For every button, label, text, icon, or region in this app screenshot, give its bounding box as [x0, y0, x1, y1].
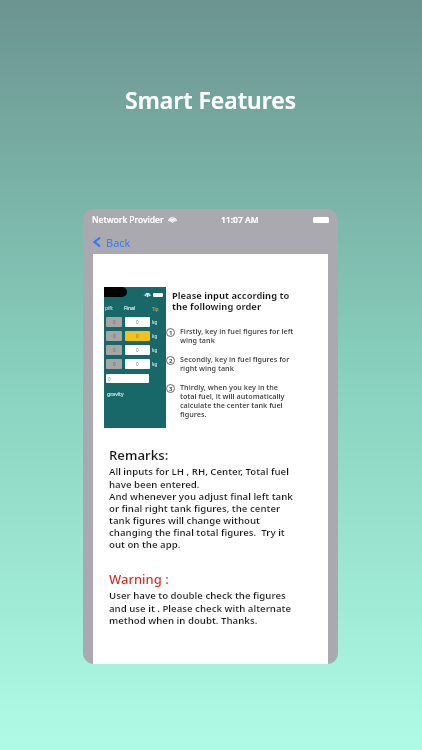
staticText: pift	[105, 305, 113, 312]
staticText: Remarks:	[109, 446, 169, 464]
staticText: Back	[106, 235, 131, 250]
staticText: 11:07 AM	[221, 214, 259, 226]
staticText: 0	[136, 319, 139, 325]
staticText: Smart Features	[125, 84, 297, 115]
staticText: 0	[136, 361, 139, 367]
other: Back	[92, 237, 102, 247]
staticText: All inputs for LH , RH, Center, Total fu…	[109, 465, 293, 550]
button[interactable]: Back	[92, 230, 338, 254]
staticText: 0	[136, 347, 139, 353]
staticText: kg	[152, 347, 158, 353]
staticText: kg	[152, 319, 158, 325]
staticText: User have to double check the figures an…	[109, 589, 292, 626]
staticText: Tip	[152, 306, 159, 312]
staticText: kg	[152, 361, 158, 367]
staticText: gravity	[107, 390, 124, 397]
staticText: 3	[169, 385, 173, 393]
staticText: Warning :	[109, 570, 169, 588]
staticText: 0	[136, 333, 139, 339]
staticText: kg	[152, 333, 158, 339]
staticText: Please input according to the following …	[172, 289, 290, 313]
staticText: 0	[113, 361, 116, 367]
staticText: Secondly, key in fuel figures for right …	[180, 354, 290, 373]
staticText: Thirdly, when you key in the total fuel,…	[180, 382, 285, 419]
staticText: Firstly, key in fuel figures for left wi…	[180, 326, 294, 345]
staticText: 0	[113, 347, 116, 353]
staticText: 0	[108, 376, 111, 382]
staticText: 0	[113, 319, 116, 325]
staticText: 0	[113, 333, 116, 339]
staticText: Final	[124, 305, 136, 312]
staticText: Network Provider	[92, 214, 164, 226]
staticText: 2	[169, 357, 173, 365]
staticText: 1	[169, 329, 173, 337]
